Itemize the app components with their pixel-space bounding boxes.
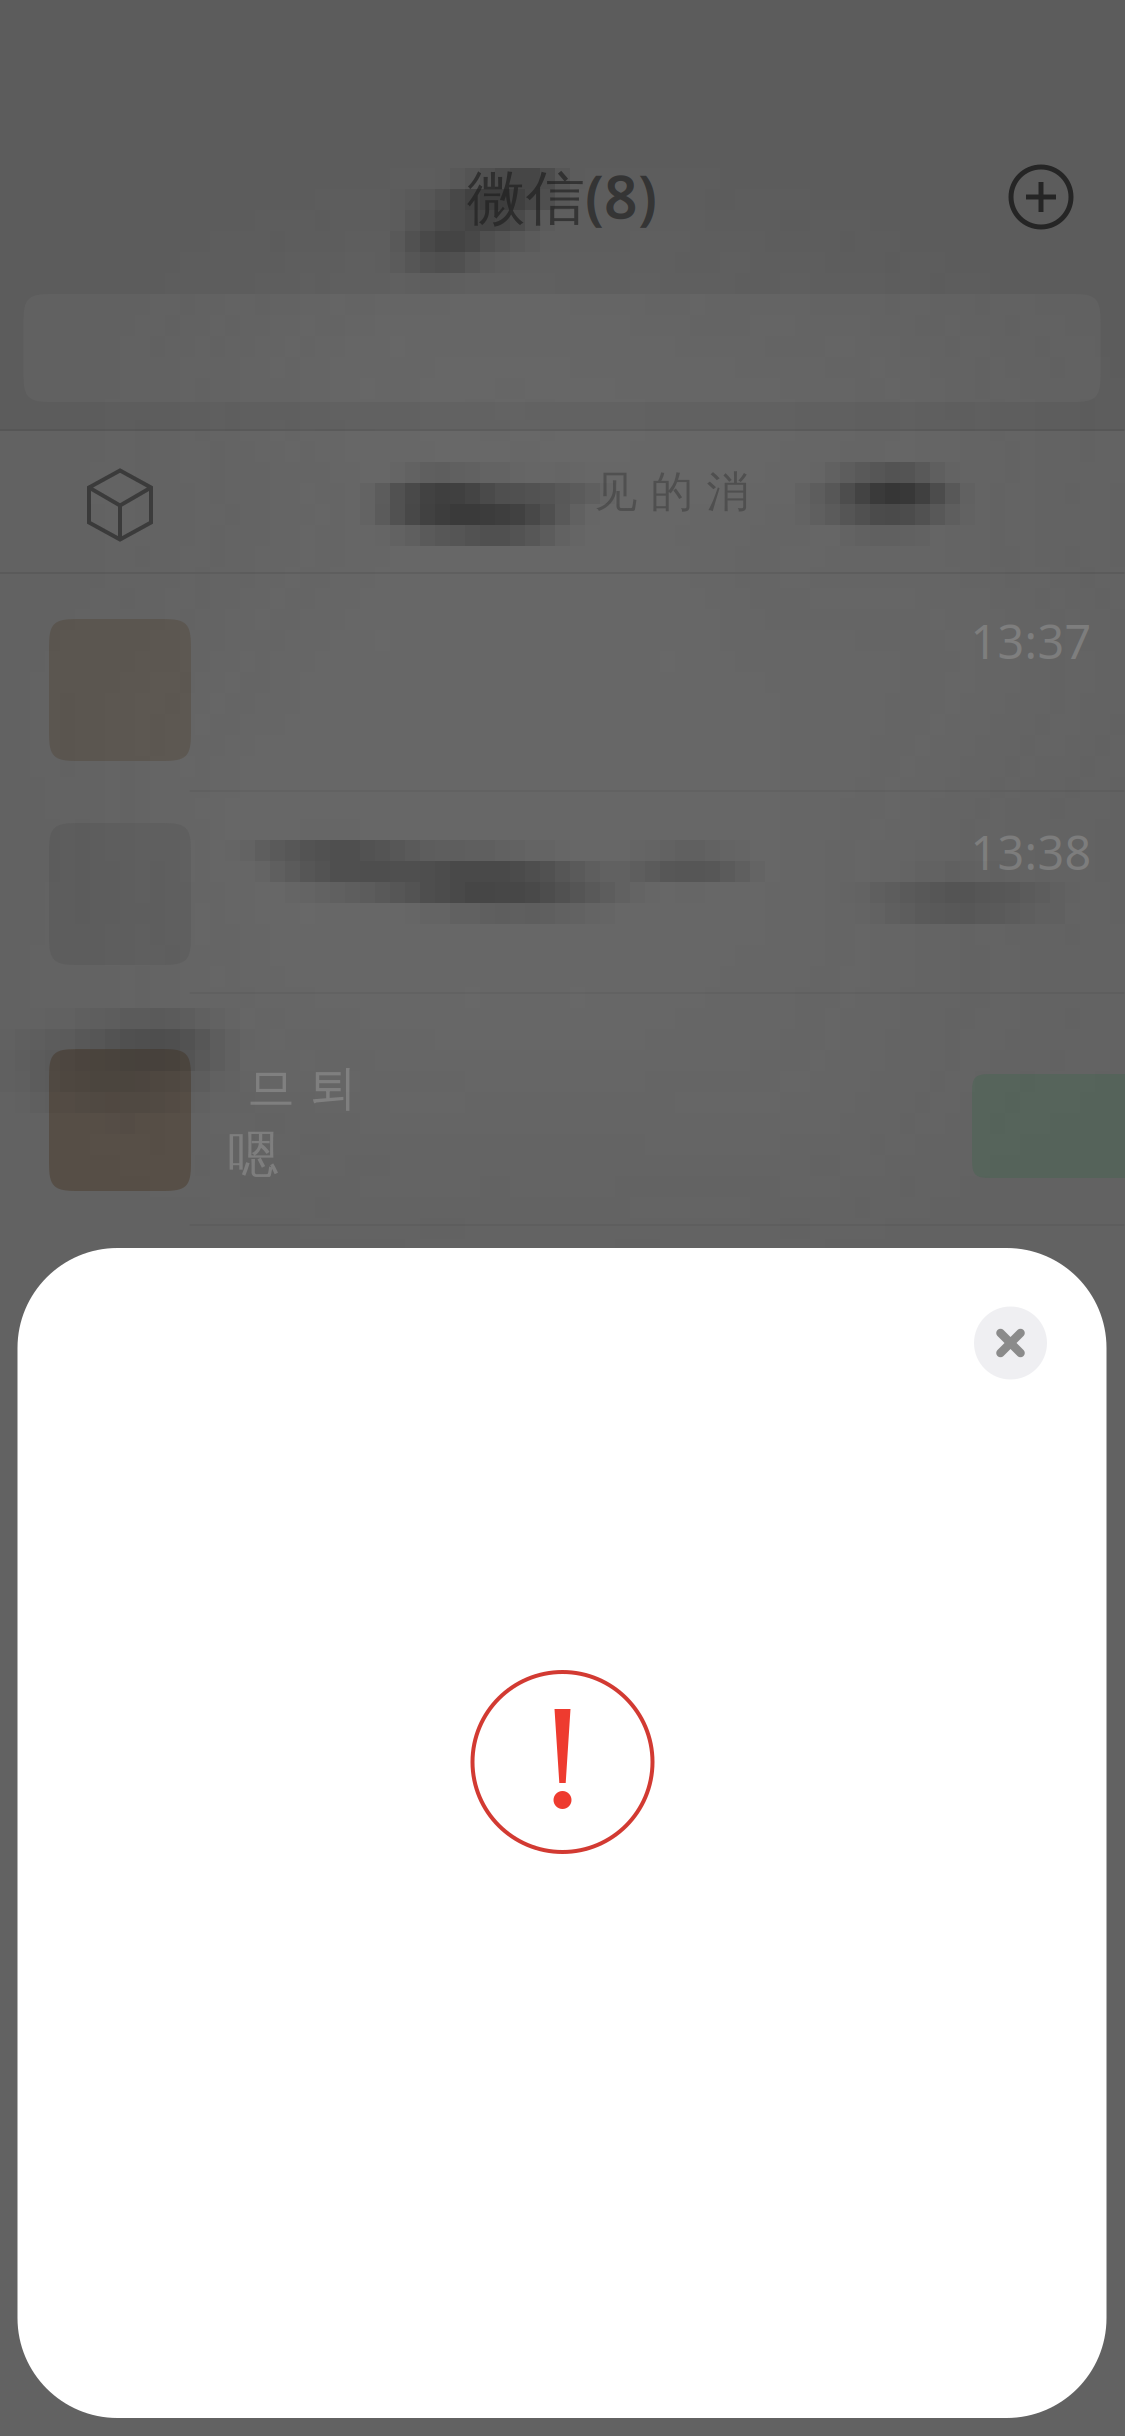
staticText: 见 的 消 — [594, 466, 749, 518]
staticText: 13:38 — [970, 821, 1091, 883]
button[interactable]: Close — [962, 1295, 1058, 1391]
staticText: 微信(8) — [467, 157, 657, 235]
button[interactable]: New chat — [993, 149, 1089, 245]
staticText: 13:37 — [970, 610, 1091, 672]
staticText: 嗯 — [227, 1124, 278, 1186]
staticText: 므 퇴 — [247, 1058, 357, 1117]
